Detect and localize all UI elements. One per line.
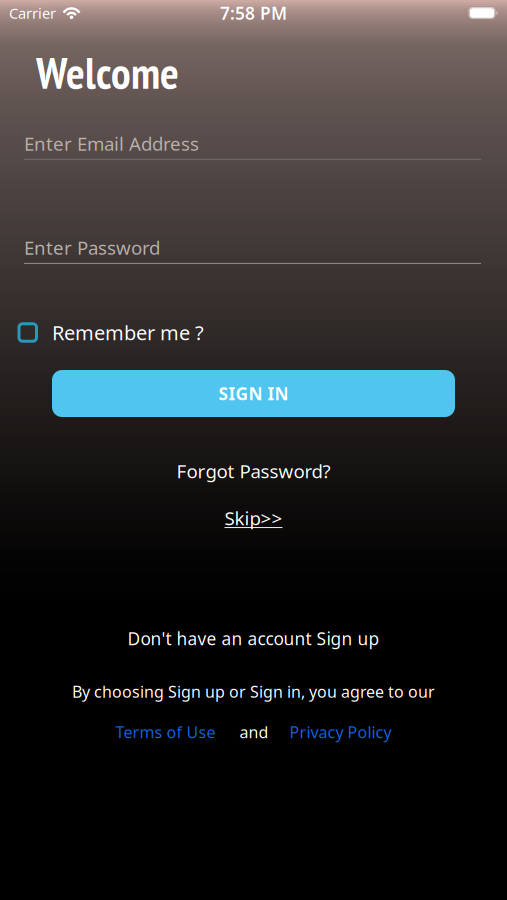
button[interactable]: Forgot Password?: [176, 459, 330, 483]
button[interactable]: Enter Email Address: [24, 131, 481, 160]
staticText: Skip>>: [224, 506, 282, 530]
staticText: and: [239, 721, 268, 743]
button[interactable]: Terms of Use: [115, 721, 215, 743]
staticText: 7:58 PM: [220, 1, 287, 24]
button[interactable]: Remember me ?: [19, 319, 488, 346]
staticText: Privacy Policy: [289, 721, 391, 743]
staticText: Terms of Use: [115, 721, 215, 743]
button[interactable]: Privacy Policy: [289, 721, 391, 743]
button[interactable]: Skip>>: [224, 506, 282, 530]
button[interactable]: SIGN IN: [52, 370, 455, 417]
staticText: By choosing Sign up or Sign in, you agre…: [72, 681, 435, 702]
button[interactable]: Don't have an account Sign up: [127, 627, 379, 650]
staticText: SIGN IN: [218, 382, 288, 405]
staticText: Don't have an account Sign up: [127, 627, 379, 650]
staticText: Remember me ?: [52, 319, 204, 346]
staticText: Carrier: [9, 3, 56, 23]
button[interactable]: Enter Password: [24, 235, 481, 264]
staticText: Enter Password: [24, 235, 160, 260]
staticText: Enter Email Address: [24, 131, 199, 156]
staticText: Welcome: [36, 44, 179, 101]
staticText: Forgot Password?: [176, 459, 330, 483]
